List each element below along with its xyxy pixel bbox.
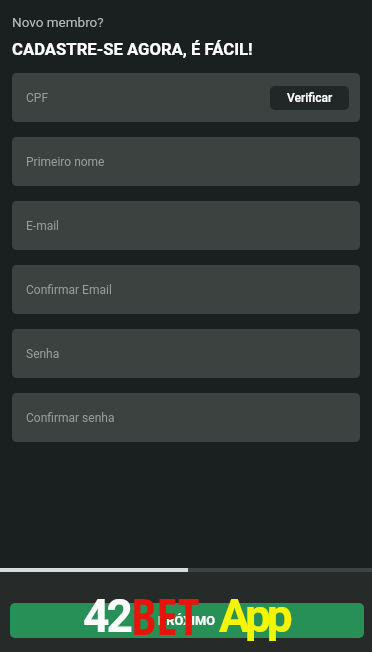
button[interactable]: Verificar <box>270 86 349 110</box>
staticText: 42 <box>83 589 130 643</box>
button[interactable]: Confirmar senha <box>12 393 360 442</box>
staticText: Confirmar Email <box>26 283 112 297</box>
staticText: Confirmar senha <box>26 411 115 425</box>
button[interactable]: Confirmar Email <box>12 265 360 314</box>
staticText: CPF <box>26 91 49 105</box>
staticText: Verificar <box>287 91 333 105</box>
staticText: Novo membro? <box>12 14 104 30</box>
staticText: Primeiro nome <box>26 155 105 169</box>
staticText: PRÓXIMO <box>158 613 216 628</box>
button[interactable]: CPF <box>12 73 360 122</box>
button[interactable]: Primeiro nome <box>12 137 360 186</box>
button[interactable]: Senha <box>12 329 360 378</box>
button[interactable]: PRÓXIMO <box>10 603 364 638</box>
button[interactable]: E-mail <box>12 201 360 250</box>
staticText: App <box>219 589 289 643</box>
staticText: Senha <box>26 347 60 361</box>
staticText: CADASTRE-SE AGORA, É FÁCIL! <box>12 40 253 60</box>
staticText: E-mail <box>26 219 60 233</box>
staticText: BET <box>131 582 200 650</box>
